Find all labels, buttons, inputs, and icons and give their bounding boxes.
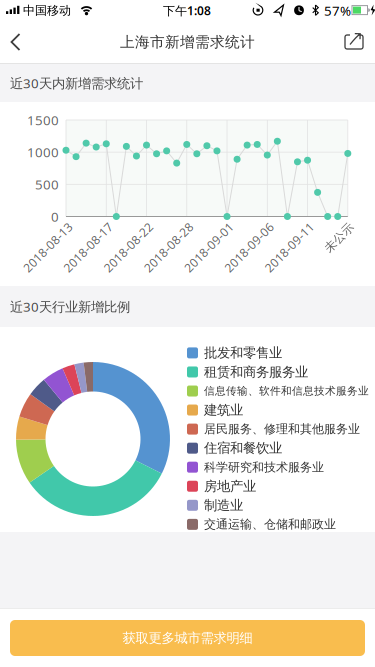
staticText: 0 [51, 208, 59, 225]
staticText: 信息传输、软件和信息技术服务业 [204, 384, 369, 397]
staticText: 1000 [27, 143, 59, 161]
staticText: 2018-09-01 [177, 239, 241, 255]
staticText: 2018-08-22 [96, 239, 160, 255]
staticText: 制造业 [204, 497, 243, 513]
staticText: 居民服务、修理和其他服务业 [204, 422, 360, 436]
staticText: 科学研究和技术服务业 [204, 460, 324, 474]
staticText: 2018-08-13 [16, 239, 80, 255]
staticText: 2018-09-11 [257, 239, 321, 255]
staticText: 房地产业 [204, 478, 256, 494]
staticText: 近30天内新增需求统计 [10, 74, 143, 92]
staticText: 2018-09-06 [217, 239, 281, 255]
staticText: 500 [35, 175, 59, 193]
staticText: 近30天行业新增比例 [10, 298, 130, 315]
staticText: 住宿和餐饮业 [204, 440, 282, 456]
staticText: 租赁和商务服务业 [204, 364, 308, 380]
staticText: 未公示 [321, 230, 357, 245]
staticText: 上海市新增需求统计 [120, 33, 255, 51]
button[interactable]: 获取更多城市需求明细 [10, 620, 365, 656]
button[interactable]: Back [0, 20, 44, 64]
staticText: 1500 [27, 111, 59, 129]
staticText: 57% [324, 2, 351, 19]
staticText: 2018-08-28 [137, 239, 201, 255]
staticText: 获取更多城市需求明细 [122, 630, 252, 646]
button[interactable]: Share [334, 20, 374, 64]
staticText: 交通运输、仓储和邮政业 [204, 517, 336, 532]
staticText: 下午1:08 [163, 2, 211, 18]
staticText: 建筑业 [204, 402, 243, 418]
staticText: 中国移动 [23, 3, 71, 18]
staticText: 批发和零售业 [204, 345, 282, 361]
staticText: 2018-08-17 [56, 239, 120, 255]
